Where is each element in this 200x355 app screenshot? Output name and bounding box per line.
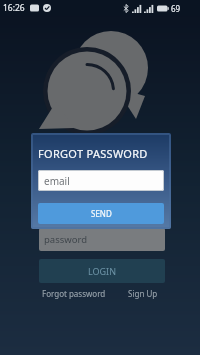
staticText: password xyxy=(44,233,88,246)
staticText: LOGIN xyxy=(88,265,117,277)
staticText: Forgot password xyxy=(42,288,106,299)
button[interactable]: Sign Up xyxy=(128,288,158,299)
staticText: Sign Up xyxy=(128,288,158,299)
staticText: SEND xyxy=(91,208,112,219)
button[interactable]: Forgot password xyxy=(42,288,106,299)
button[interactable]: SEND xyxy=(38,203,164,224)
staticText: 16:26 xyxy=(3,2,25,14)
staticText: FORGOT PASSWORD xyxy=(38,146,148,161)
staticText: 69 xyxy=(171,3,181,14)
staticText: email xyxy=(44,174,70,188)
button[interactable]: LOGIN xyxy=(39,259,165,283)
